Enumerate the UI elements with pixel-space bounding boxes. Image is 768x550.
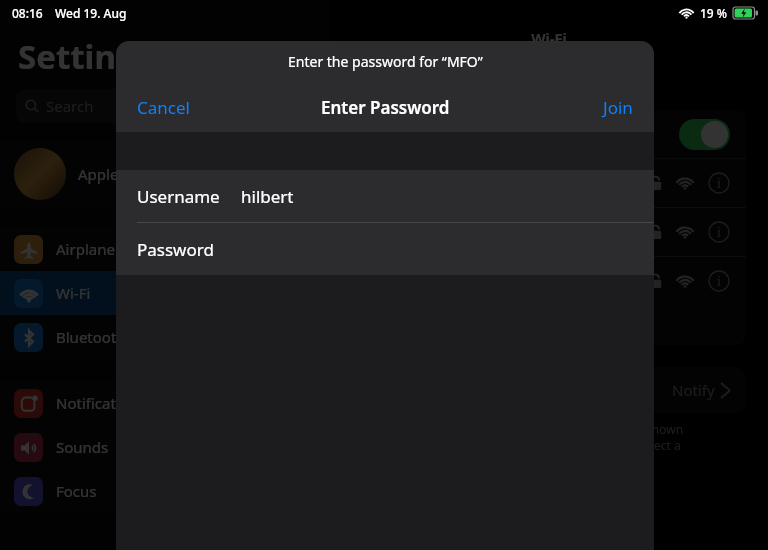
staticText: Focus — [56, 481, 97, 501]
staticText: Wed 19. Aug — [55, 5, 127, 21]
staticText: Bluetooth — [56, 327, 126, 347]
staticText: i — [717, 175, 721, 191]
button[interactable]: Ask to Join Networks — [352, 367, 746, 413]
button[interactable]: Network info — [708, 221, 730, 243]
button[interactable]: Network info — [708, 270, 730, 292]
staticText: Enter the password for “MFO” — [288, 52, 483, 71]
staticText: Apple ID — [78, 164, 139, 184]
button[interactable]: MFO — [352, 159, 746, 207]
button[interactable]: Airplane Mode — [0, 227, 330, 271]
staticText: Notifications — [56, 393, 146, 413]
button[interactable]: Sounds — [0, 425, 330, 469]
staticText: Known networks will be joined automatica… — [360, 421, 684, 469]
staticText: i — [717, 224, 721, 240]
staticText: Sounds — [56, 437, 109, 457]
button[interactable]: Network info — [708, 172, 730, 194]
staticText: i — [717, 273, 721, 289]
staticText: Join — [603, 96, 633, 119]
button[interactable]: Wi-Fi — [352, 110, 746, 158]
staticText: Network 3 — [368, 271, 441, 291]
staticText: Network 2 — [368, 222, 441, 242]
staticText: Airplane Mode — [56, 239, 160, 259]
button[interactable]: Network 2 — [352, 208, 746, 256]
staticText: Enter Password — [321, 96, 450, 119]
button[interactable]: Cancel — [116, 82, 211, 132]
staticText: Search — [46, 96, 94, 116]
button[interactable]: Wi-Fi toggle — [679, 119, 730, 150]
button[interactable]: Password — [116, 223, 654, 275]
staticText: Wi-Fi — [330, 28, 768, 48]
button[interactable]: Username — [116, 170, 654, 222]
button[interactable]: Bluetooth — [0, 315, 330, 359]
button[interactable]: Network 3 — [352, 257, 746, 305]
button[interactable]: Wi-Fi — [0, 271, 330, 315]
staticText: 08:16 — [12, 5, 43, 21]
staticText: Wi-Fi — [368, 124, 403, 144]
button[interactable]: Search — [16, 89, 314, 123]
staticText: Settings — [18, 34, 154, 79]
staticText: Username — [137, 185, 220, 208]
staticText: hilbert — [241, 185, 294, 208]
staticText: Cancel — [137, 96, 190, 119]
staticText: Wi-Fi — [56, 283, 91, 303]
staticText: Notify — [672, 380, 715, 400]
button[interactable]: Notifications — [0, 381, 330, 425]
button[interactable]: Join — [582, 82, 654, 132]
staticText: 19 % — [700, 5, 728, 21]
button[interactable]: Focus — [0, 469, 330, 513]
staticText: Password — [137, 238, 214, 261]
button[interactable]: Apple ID — [0, 141, 330, 207]
